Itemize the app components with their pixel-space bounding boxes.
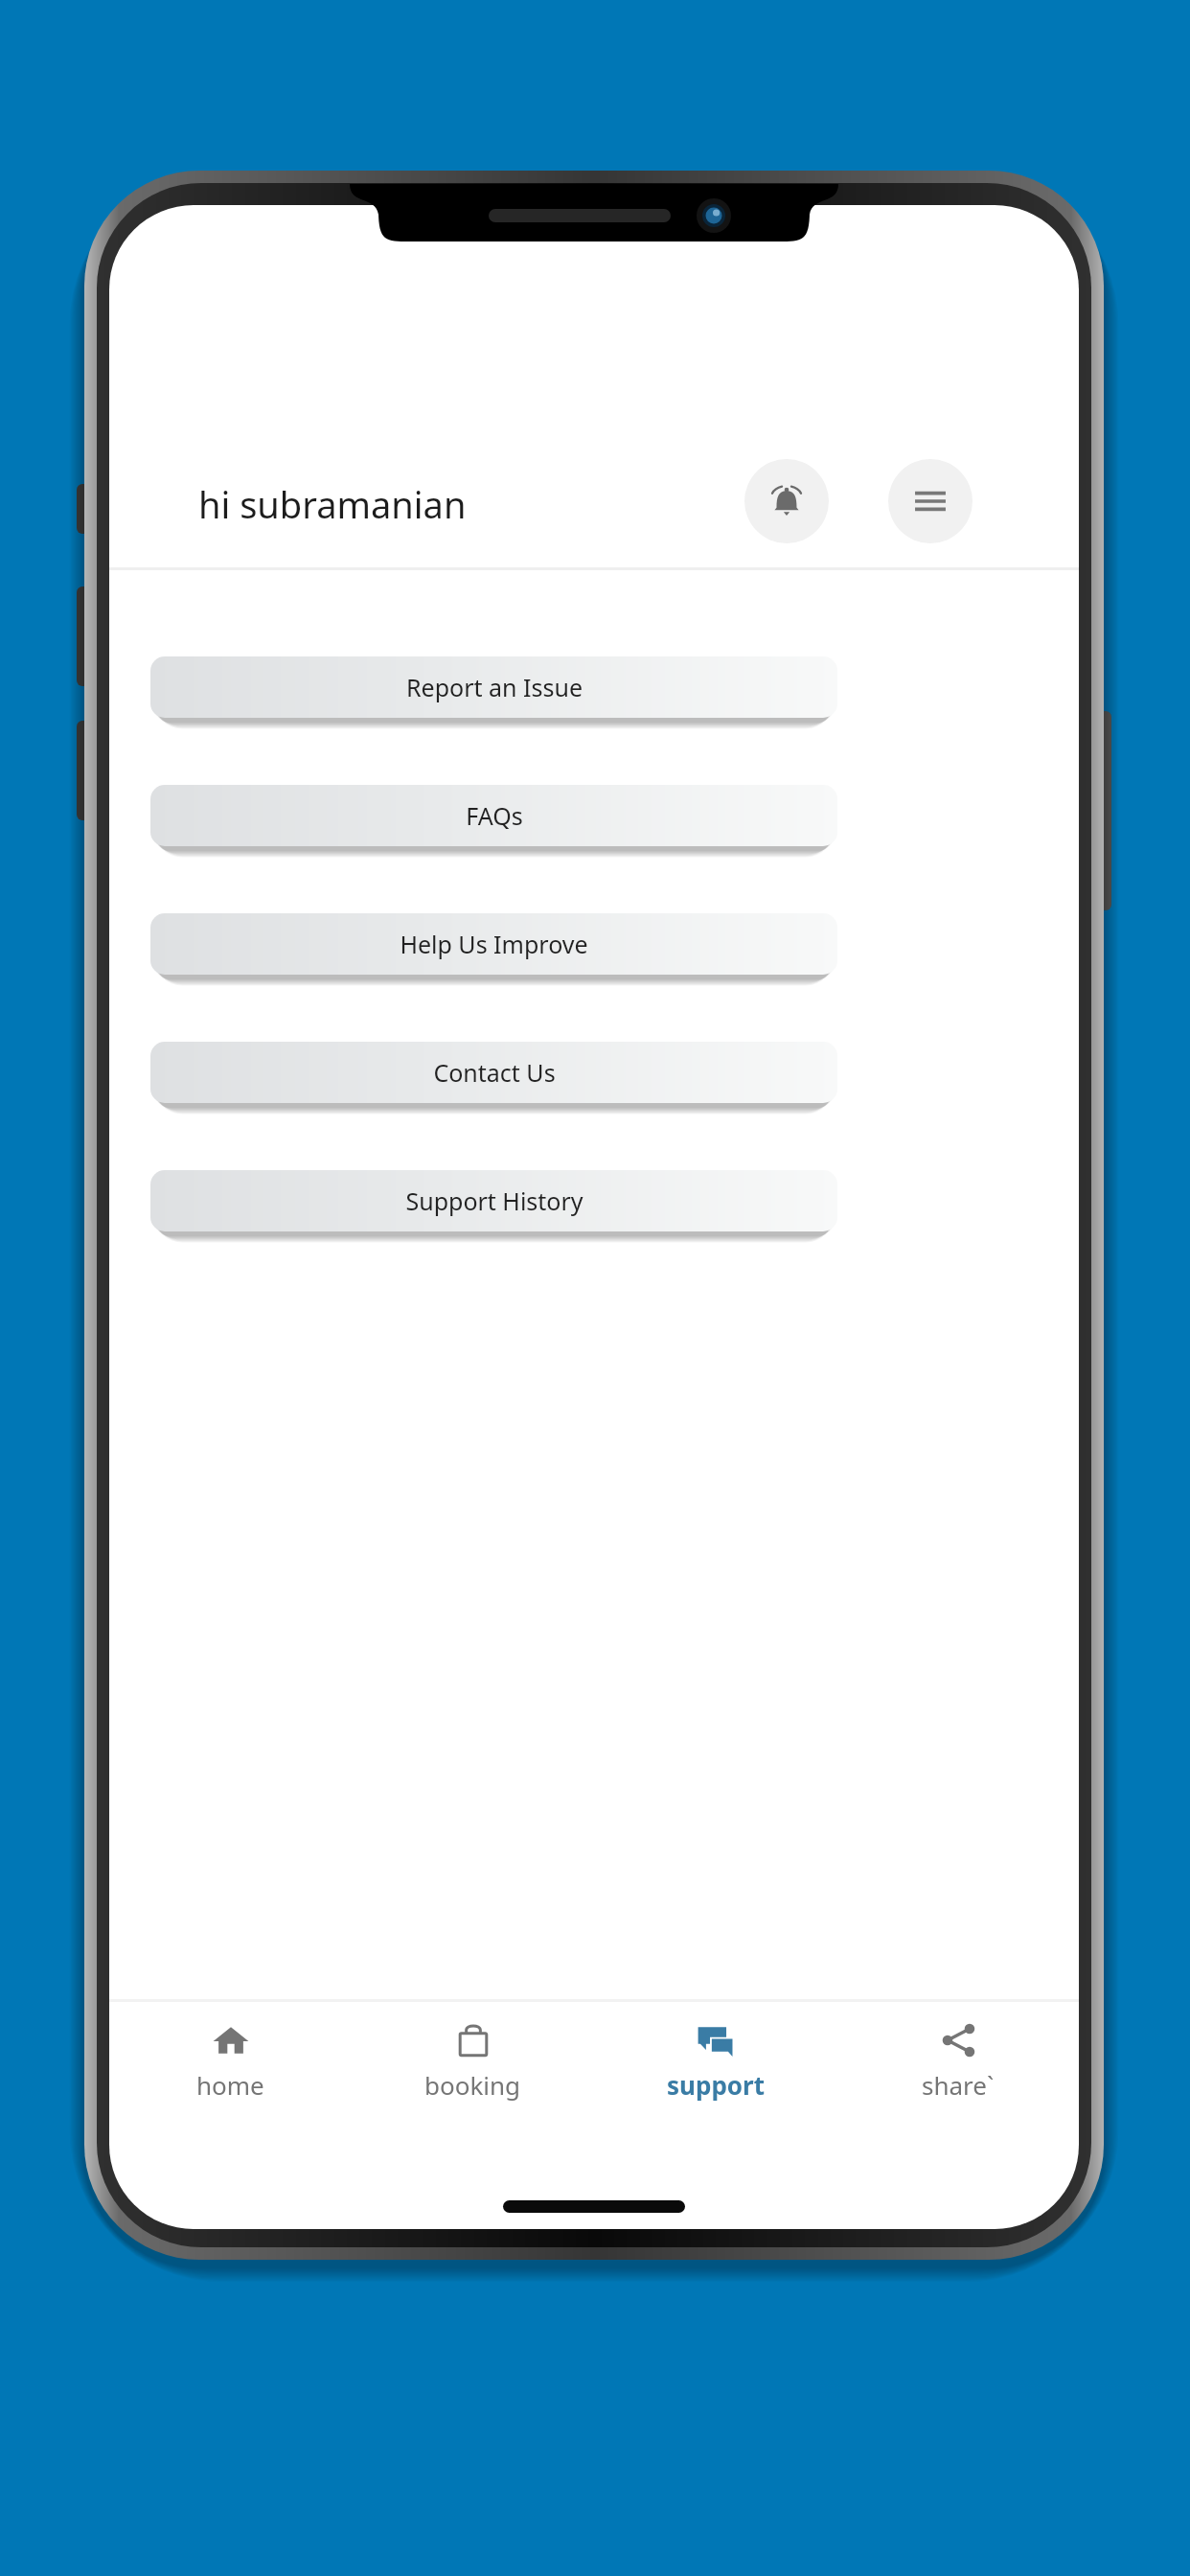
button[interactable]: booking [352,2008,594,2121]
staticText: Help Us Improve [400,928,588,960]
staticText: share` [922,2068,995,2102]
staticText: hi subramanian [198,479,467,529]
staticText: Contact Us [433,1056,556,1089]
button[interactable]: Contact Us [150,1042,837,1103]
staticText: home [196,2068,264,2102]
button[interactable]: home [109,2008,352,2121]
button[interactable]: Report an Issue [150,656,837,718]
staticText: FAQs [466,799,523,832]
button[interactable]: support [594,2008,836,2121]
staticText: Report an Issue [406,671,583,703]
button[interactable]: Support History [150,1170,837,1231]
button[interactable]: Menu [888,459,973,543]
staticText: support [667,2068,765,2102]
button[interactable]: Notifications [744,459,829,543]
button[interactable]: share` [836,2008,1079,2121]
staticText: booking [424,2068,521,2102]
button[interactable]: Help Us Improve [150,913,837,975]
button[interactable]: FAQs [150,785,837,846]
staticText: Support History [405,1184,584,1217]
